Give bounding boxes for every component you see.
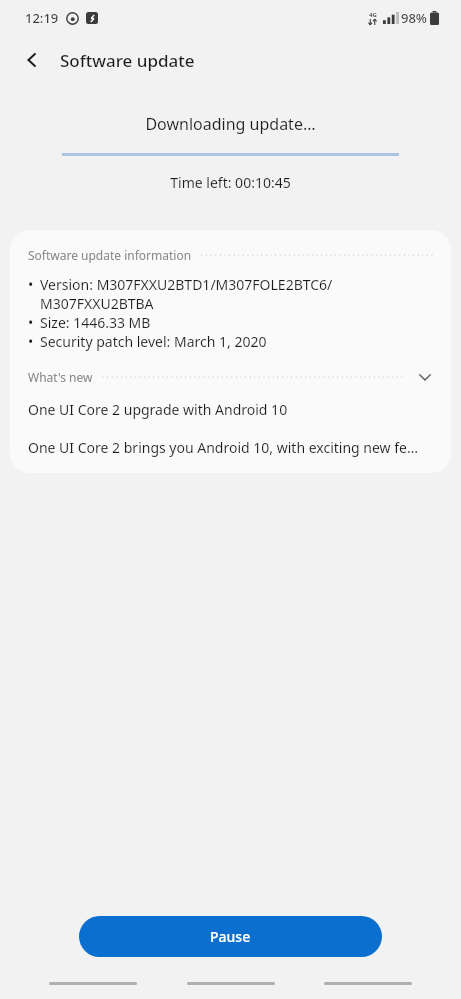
staticText: Pause bbox=[210, 927, 251, 946]
staticText: Downloading update… bbox=[0, 113, 461, 135]
staticText: Software update bbox=[60, 49, 195, 72]
staticText: Security patch level: March 1, 2020 bbox=[40, 332, 267, 351]
staticText: Software update information bbox=[28, 247, 192, 263]
button[interactable]: Recents bbox=[49, 971, 137, 995]
other: Expand What's new bbox=[415, 367, 435, 387]
staticText: Version: M307FXXU2BTD1/M307FOLE2BTC6/ bbox=[40, 275, 333, 294]
staticText: • bbox=[28, 313, 40, 332]
button[interactable]: Back bbox=[324, 971, 412, 995]
staticText: 4G bbox=[369, 11, 377, 19]
button[interactable]: What's new bbox=[28, 364, 435, 390]
staticText: • bbox=[28, 275, 40, 294]
staticText: One UI Core 2 brings you Android 10, wit… bbox=[28, 438, 419, 457]
staticText: Size: 1446.33 MB bbox=[40, 313, 151, 332]
staticText: What's new bbox=[28, 369, 93, 385]
button[interactable]: Pause bbox=[79, 916, 382, 957]
staticText: One UI Core 2 upgrade with Android 10 bbox=[28, 400, 288, 419]
button[interactable]: Back bbox=[16, 44, 48, 76]
staticText: • bbox=[28, 332, 40, 351]
staticText: Time left: 00:10:45 bbox=[0, 173, 461, 192]
staticText: 98% bbox=[401, 9, 427, 27]
button[interactable]: Home bbox=[187, 971, 275, 995]
staticText: 12:19 bbox=[25, 9, 59, 27]
staticText: M307FXXU2BTBA bbox=[40, 294, 154, 313]
